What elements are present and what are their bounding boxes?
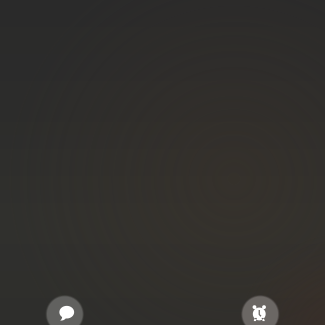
button[interactable]: Message [45, 294, 84, 325]
button[interactable]: Alarm [240, 294, 280, 325]
